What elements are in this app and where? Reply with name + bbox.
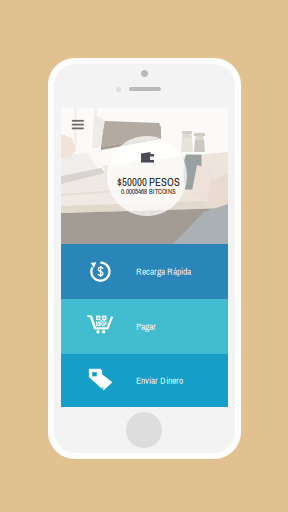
staticText: Pagar: [136, 320, 156, 333]
staticText: Enviar Dinero: [136, 374, 183, 387]
staticText: $50000 PESOS: [117, 175, 180, 189]
staticText: Recarga Rápida: [136, 265, 191, 278]
button[interactable]: Recarga Rápida: [61, 244, 228, 299]
staticText: 0.0005468 BITCOINS: [121, 187, 176, 196]
button[interactable]: Menu: [66, 114, 90, 135]
button[interactable]: Pagar: [61, 299, 228, 354]
button[interactable]: Enviar Dinero: [61, 354, 228, 407]
